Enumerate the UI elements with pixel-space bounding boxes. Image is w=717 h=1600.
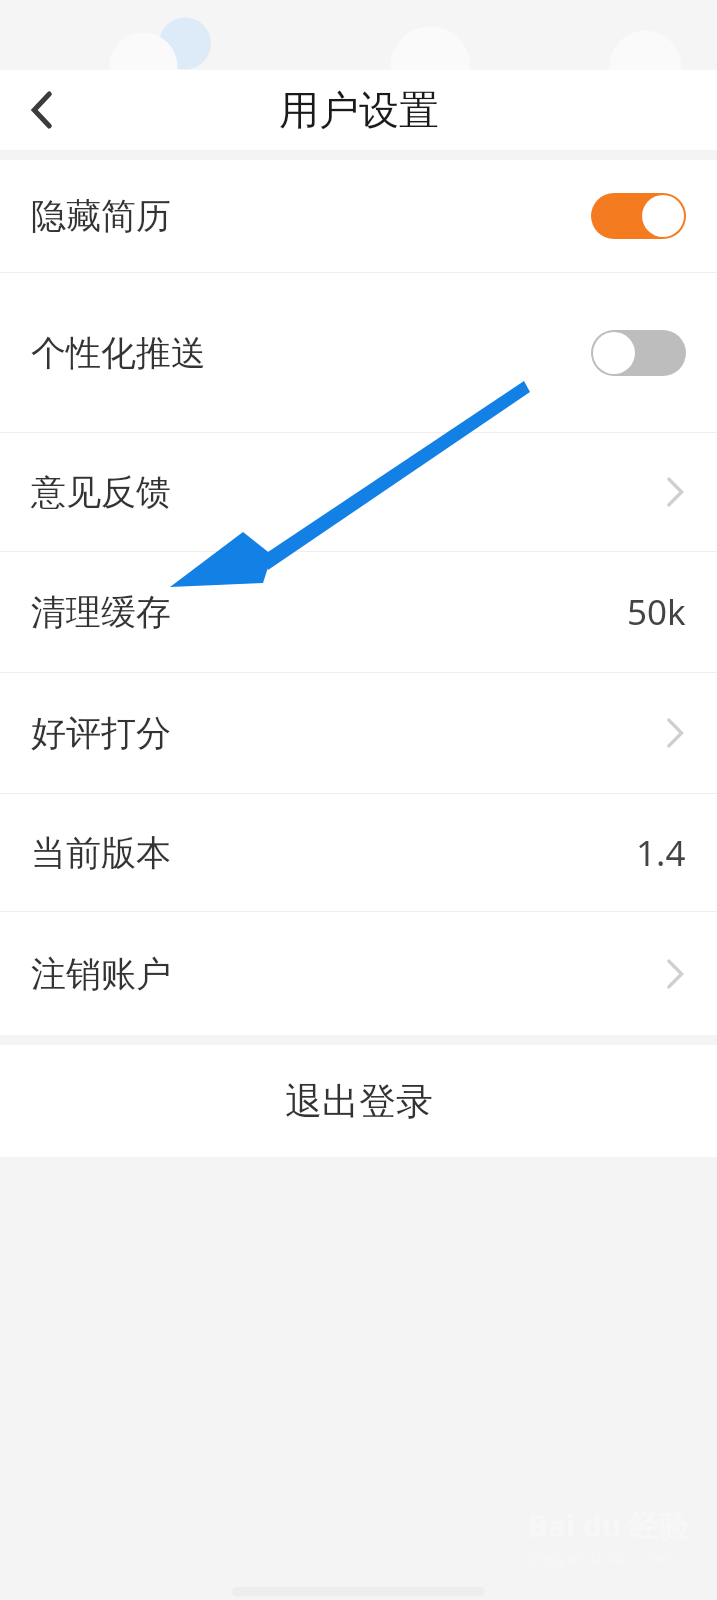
button[interactable]: Toggle off: [591, 330, 686, 376]
staticText: 隐藏简历: [31, 194, 171, 238]
button[interactable]: Back: [0, 70, 84, 150]
staticText: 退出登录: [285, 1078, 433, 1125]
button[interactable]: 好评打分: [0, 673, 717, 793]
staticText: 清理缓存: [31, 590, 171, 634]
button[interactable]: 清理缓存: [0, 552, 717, 672]
button[interactable]: 注销账户: [0, 912, 717, 1035]
staticText: 用户设置: [279, 85, 439, 135]
button[interactable]: Toggle on: [591, 193, 686, 239]
staticText: 意见反馈: [31, 470, 171, 514]
staticText: 当前版本: [31, 831, 171, 875]
staticText: 个性化推送: [31, 331, 206, 375]
button[interactable]: 隐藏简历: [0, 160, 717, 272]
staticText: 注销账户: [31, 952, 171, 996]
staticText: 50k: [627, 588, 686, 636]
button[interactable]: 意见反馈: [0, 433, 717, 551]
button[interactable]: 当前版本: [0, 794, 717, 911]
button[interactable]: 退出登录: [0, 1045, 717, 1157]
staticText: 1.4: [636, 829, 686, 877]
button[interactable]: 个性化推送: [0, 273, 717, 432]
staticText: 好评打分: [31, 711, 171, 755]
